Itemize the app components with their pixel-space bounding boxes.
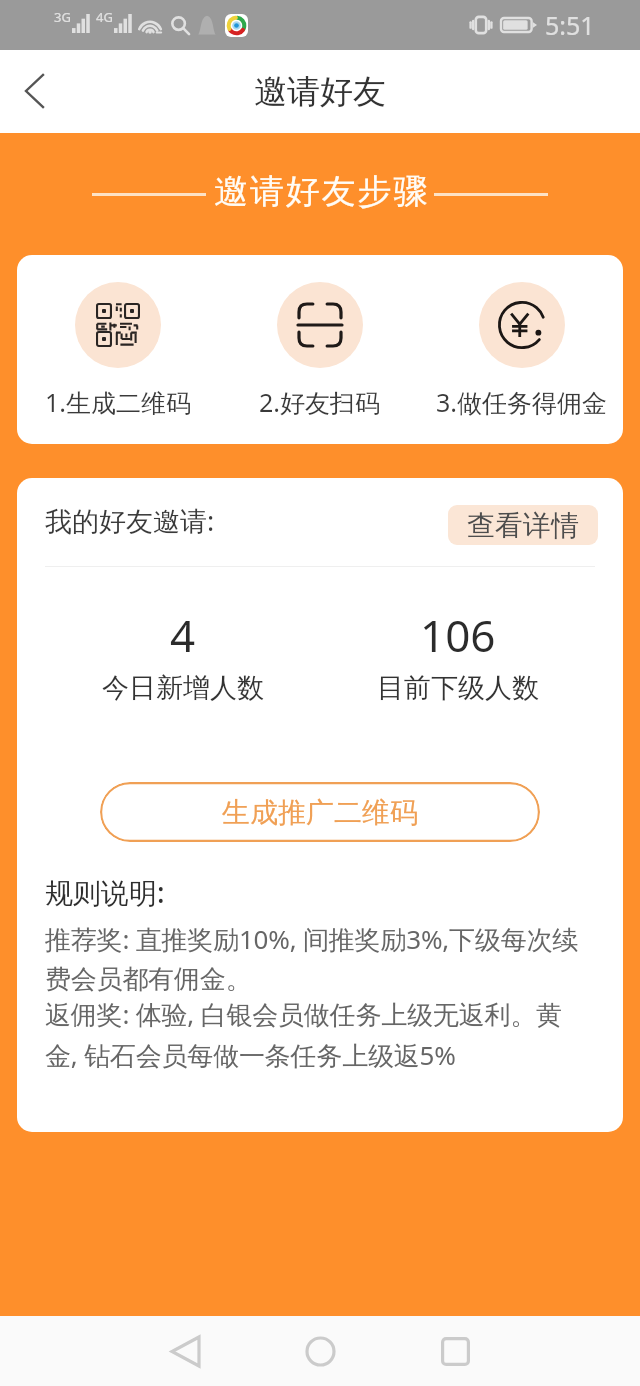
button[interactable]: Recents [420, 1316, 490, 1386]
staticText: 目前下级人数 [377, 671, 539, 705]
staticText: 推荐奖: 直推奖励10%, 间推奖励3%,下级每次续 费会员都有佣金。 [45, 921, 579, 996]
button[interactable]: 2.好友扫码 [219, 282, 421, 419]
staticText: 返佣奖: 体验, 白银会员做任务上级无返利。黄 金, 钻石会员每做一条任务上级返… [45, 996, 562, 1073]
staticText: 查看详情 [467, 508, 579, 543]
staticText: 生成推广二维码 [222, 795, 418, 830]
button[interactable]: 1.生成二维码 [17, 282, 219, 419]
staticText: 规则说明: [45, 873, 165, 911]
button[interactable]: 生成推广二维码 [100, 782, 540, 842]
staticText: 今日新增人数 [102, 671, 264, 705]
button[interactable]: Back [0, 61, 62, 123]
staticText: 5:51 [545, 8, 595, 42]
staticText: 1.生成二维码 [45, 385, 192, 419]
staticText: 3.做任务得佣金 [436, 385, 608, 419]
staticText: 4G [96, 8, 113, 26]
button[interactable]: Home [285, 1316, 355, 1386]
staticText: 邀请好友 [254, 71, 386, 113]
button[interactable]: Back [150, 1316, 220, 1386]
staticText: 我的好友邀请: [45, 502, 215, 539]
button[interactable]: 查看详情 [448, 505, 598, 545]
button[interactable]: 3.做任务得佣金 [421, 282, 623, 419]
staticText: 106 [420, 605, 496, 665]
staticText: 4 [170, 605, 196, 665]
staticText: 2.好友扫码 [259, 385, 381, 419]
staticText: 3G [54, 8, 71, 26]
staticText: 邀请好友步骤 [214, 170, 430, 213]
